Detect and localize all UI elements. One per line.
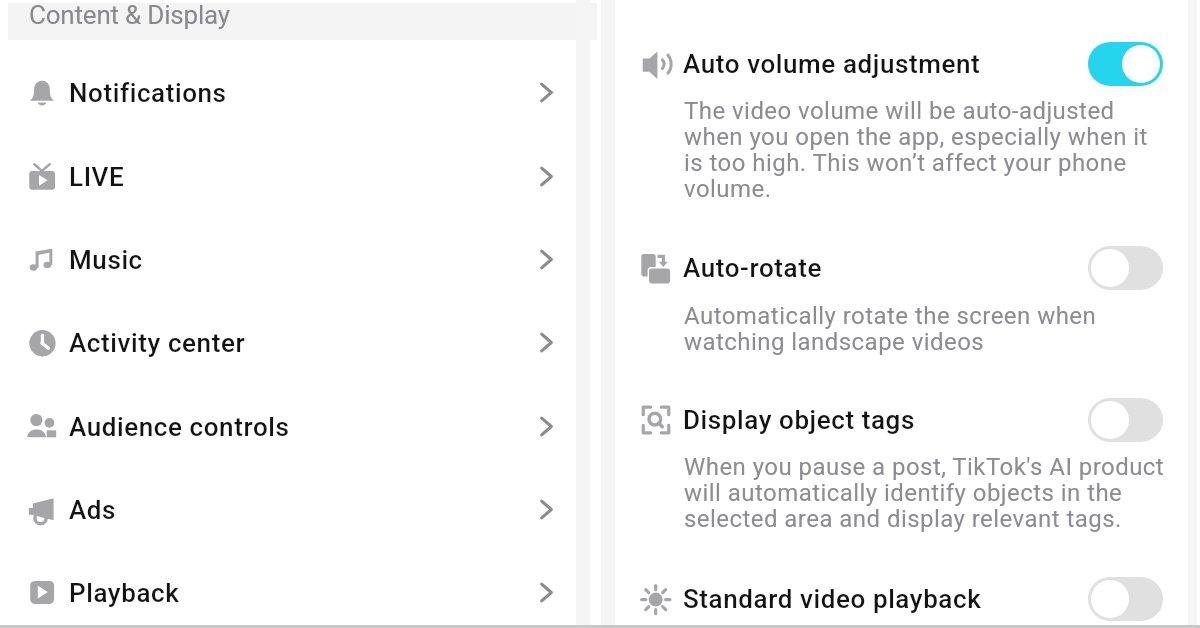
other: Open LIVE <box>536 166 557 187</box>
button[interactable]: Playback <box>0 551 589 628</box>
staticText: Content & Display <box>29 0 230 30</box>
staticText: Activity center <box>69 328 246 358</box>
other: Open Ads <box>536 499 557 520</box>
staticText: Display object tags <box>683 405 915 435</box>
other: Open Activity center <box>536 332 557 353</box>
staticText: LIVE <box>69 162 125 192</box>
button[interactable]: Display object tags off <box>1088 398 1163 442</box>
button[interactable]: Standard video playback <box>601 577 1190 621</box>
staticText: Notifications <box>69 78 227 108</box>
button[interactable]: Display object tags <box>601 398 1190 442</box>
button[interactable]: Standard video playback off <box>1088 577 1163 621</box>
other: Open Notifications <box>536 82 557 103</box>
button[interactable]: Notifications <box>0 51 589 134</box>
other: Open Audience controls <box>536 416 557 437</box>
other: Open Music <box>536 249 557 270</box>
staticText: The video volume will be auto-adjusted w… <box>684 97 1165 203</box>
staticText: Audience controls <box>69 412 290 442</box>
staticText: Auto volume adjustment <box>683 49 981 79</box>
button[interactable]: Auto-rotate <box>601 246 1190 290</box>
staticText: Standard video playback <box>683 584 982 614</box>
button[interactable]: LIVE <box>0 135 589 218</box>
staticText: Automatically rotate the screen when wat… <box>684 302 1165 356</box>
button[interactable]: Audience controls <box>0 385 589 468</box>
button[interactable]: Auto volume adjustment <box>601 42 1190 86</box>
other: Open Playback <box>536 582 557 603</box>
button[interactable]: Activity center <box>0 301 589 384</box>
staticText: Playback <box>69 578 180 608</box>
staticText: When you pause a post, TikTok's AI produ… <box>684 453 1165 533</box>
staticText: Music <box>69 245 143 275</box>
button[interactable]: Music <box>0 218 589 301</box>
button[interactable]: Auto volume adjustment on <box>1088 42 1163 86</box>
button[interactable]: Auto-rotate off <box>1088 246 1163 290</box>
button[interactable]: Ads <box>0 468 589 551</box>
staticText: Ads <box>69 495 117 525</box>
staticText: Auto-rotate <box>683 253 822 283</box>
